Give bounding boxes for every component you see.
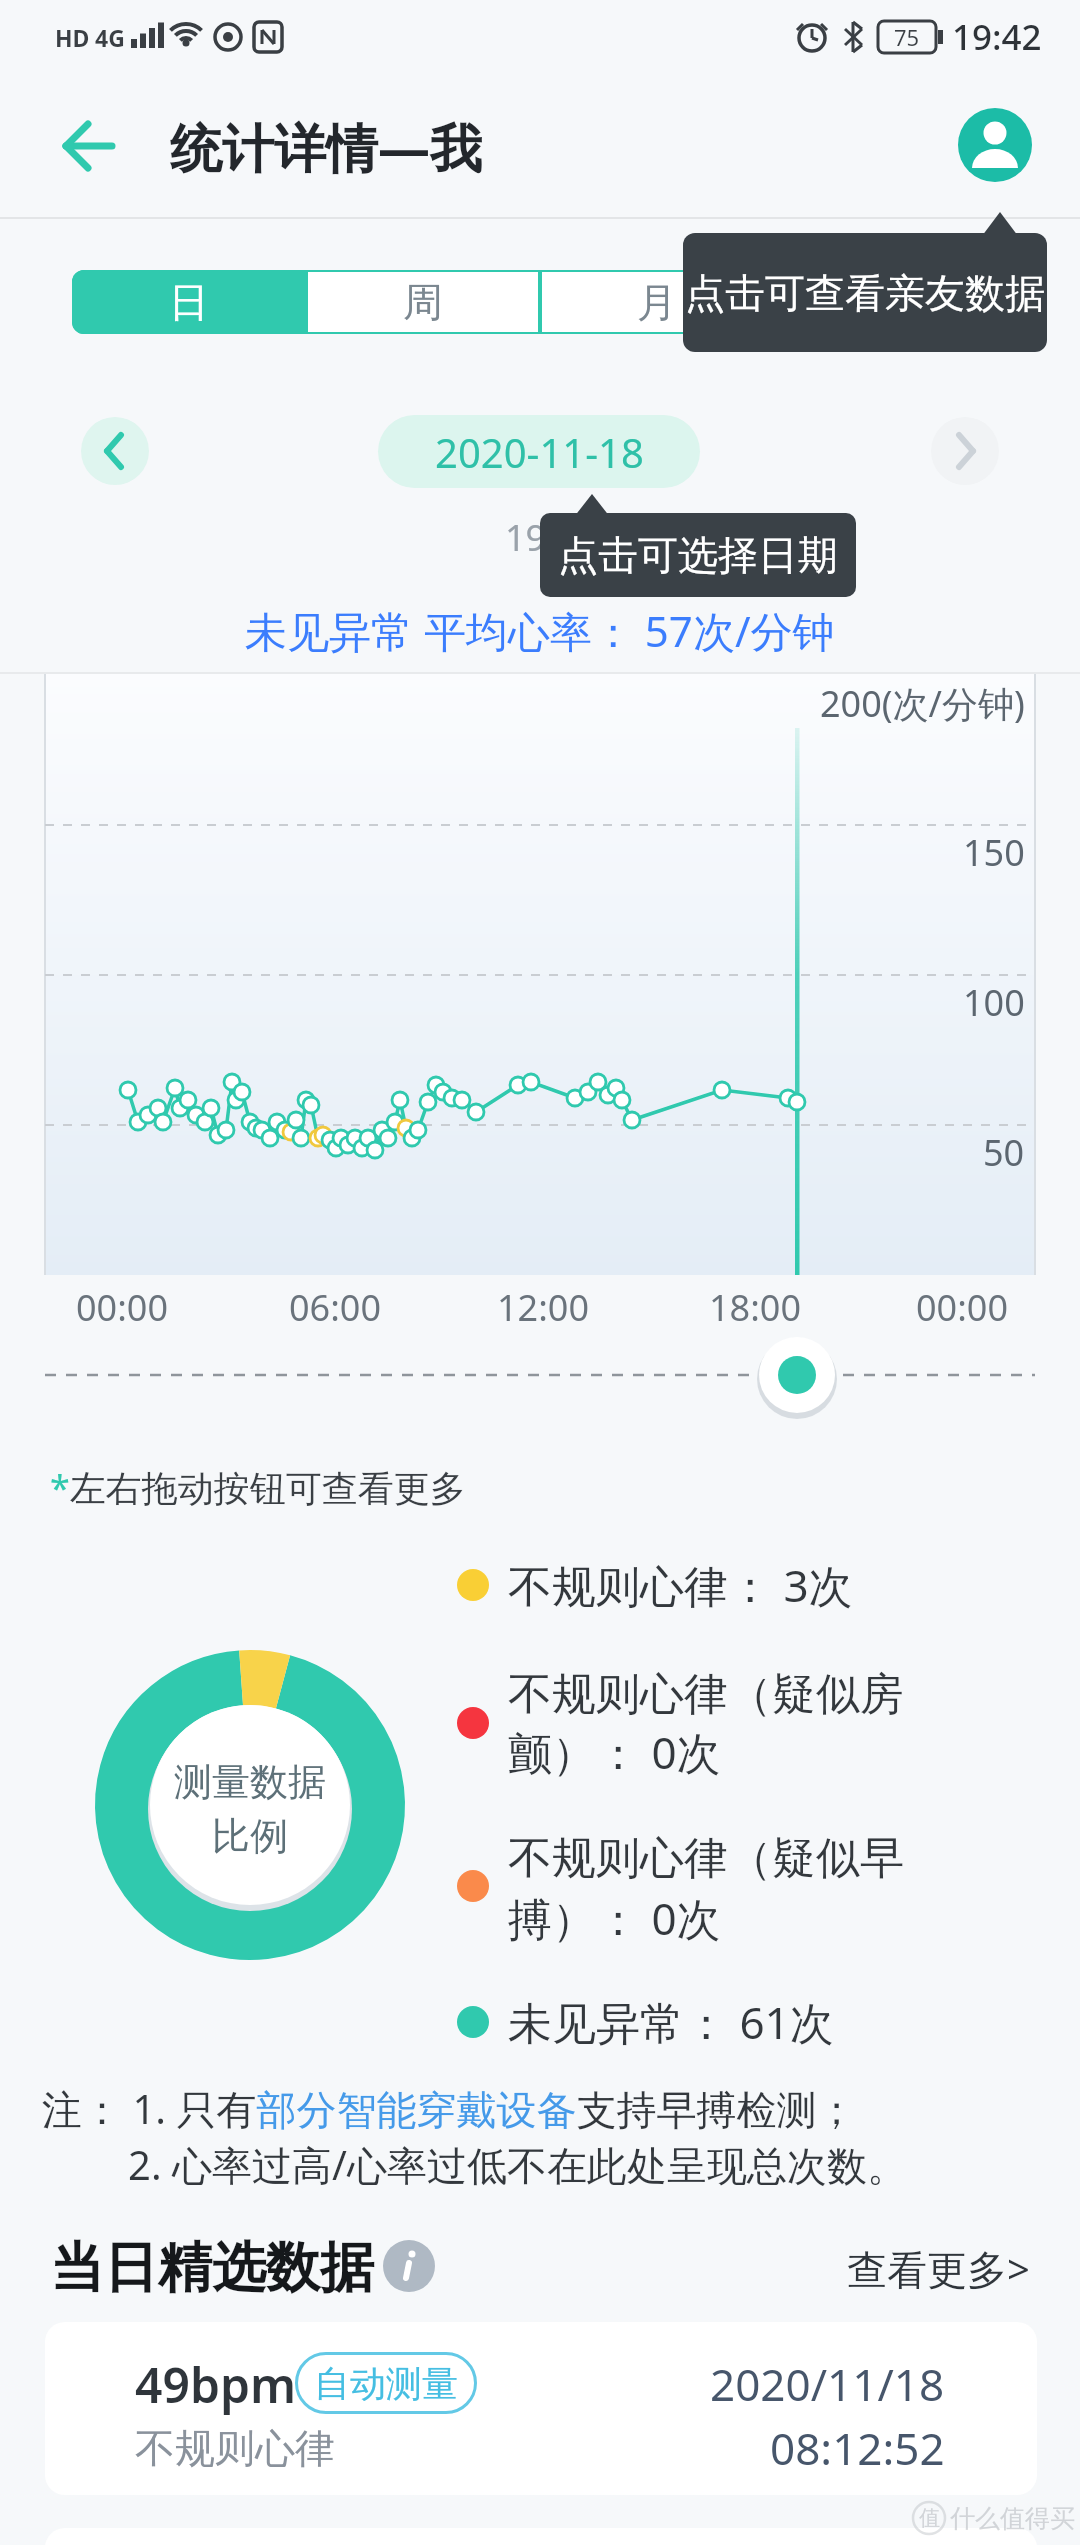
staticText: 未见异常： 61次 <box>508 1992 834 2052</box>
button[interactable]: 查看更多> <box>770 2223 1030 2313</box>
staticText: 100 <box>963 978 1025 1027</box>
staticText: 自动测量 <box>314 2361 458 2406</box>
staticText: 2020/11/18 <box>710 2354 945 2414</box>
button[interactable]: 日 <box>72 270 306 334</box>
staticText: 不规则心律 <box>135 2423 335 2473</box>
staticText: 4G <box>95 22 125 53</box>
staticText: 周 <box>403 277 443 327</box>
button[interactable]: 周 <box>306 270 540 334</box>
staticText: 月 <box>637 277 677 327</box>
staticText: 比例 <box>212 1812 288 1860</box>
button[interactable] <box>81 417 149 485</box>
staticText: 注： 1. 只有部分智能穿戴设备支持早搏检测； <box>42 2081 857 2136</box>
staticText: 什么值得买 <box>950 2503 1075 2534</box>
button[interactable] <box>955 105 1035 185</box>
staticText: 值 <box>919 2505 940 2531</box>
staticText: 搏）： 0次 <box>508 1888 721 1948</box>
button[interactable]: 2020-11-18 <box>378 415 700 488</box>
staticText: 不规则心律（疑似早 <box>508 1831 904 1886</box>
staticText: 不规则心律： 3次 <box>508 1555 853 1615</box>
staticText: HD <box>55 22 90 53</box>
staticText: 不规则心律（疑似房 <box>508 1667 904 1722</box>
staticText: 未见异常 平均心率： 57次/分钟 <box>245 602 835 659</box>
staticText: 200(次/分钟) <box>820 679 1025 728</box>
staticText: 00:00 <box>916 1283 1009 1332</box>
staticText: 统计详情—我 <box>170 111 483 182</box>
button[interactable]: 年 <box>774 270 1008 334</box>
staticText: 日 <box>169 277 209 327</box>
button[interactable] <box>45 2322 1037 2495</box>
staticText: 19:42 <box>952 13 1042 61</box>
button[interactable]: 月 <box>540 270 774 334</box>
staticText: 颤）： 0次 <box>508 1722 721 1782</box>
staticText: 00:00 <box>76 1283 169 1332</box>
staticText: 12:00 <box>497 1283 590 1332</box>
staticText: 75 <box>894 22 920 52</box>
staticText: 点击可选择日期 <box>558 530 838 580</box>
staticText: 50 <box>983 1128 1025 1177</box>
staticText: 2. 心率过高/心率过低不在此处呈现总次数。 <box>128 2137 907 2192</box>
staticText: 查看更多> <box>847 2241 1030 2296</box>
staticText: 08:12:52 <box>770 2418 945 2478</box>
staticText: 06:00 <box>289 1283 382 1332</box>
staticText: *左右拖动按钮可查看更多 <box>50 1463 466 1512</box>
staticText: 当日精选数据 <box>50 2234 374 2302</box>
staticText: 150 <box>963 828 1025 877</box>
staticText: 18:00 <box>709 1283 802 1332</box>
staticText: 49bpm <box>135 2352 297 2417</box>
staticText: 点击可查看亲友数据 <box>685 268 1045 318</box>
staticText: 测量数据 <box>174 1758 326 1806</box>
button[interactable] <box>931 417 999 485</box>
staticText: 年 <box>871 277 911 327</box>
button[interactable] <box>40 110 135 182</box>
staticText: 19:24 <box>505 513 598 562</box>
staticText: 2020-11-18 <box>435 425 644 479</box>
